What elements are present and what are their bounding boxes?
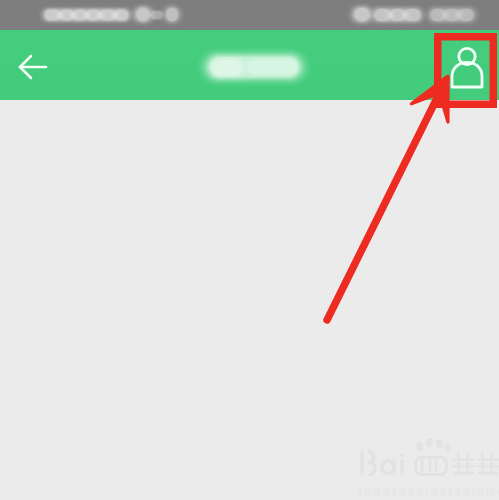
button[interactable]: Back (8, 42, 58, 92)
button[interactable]: Profile (442, 33, 492, 97)
